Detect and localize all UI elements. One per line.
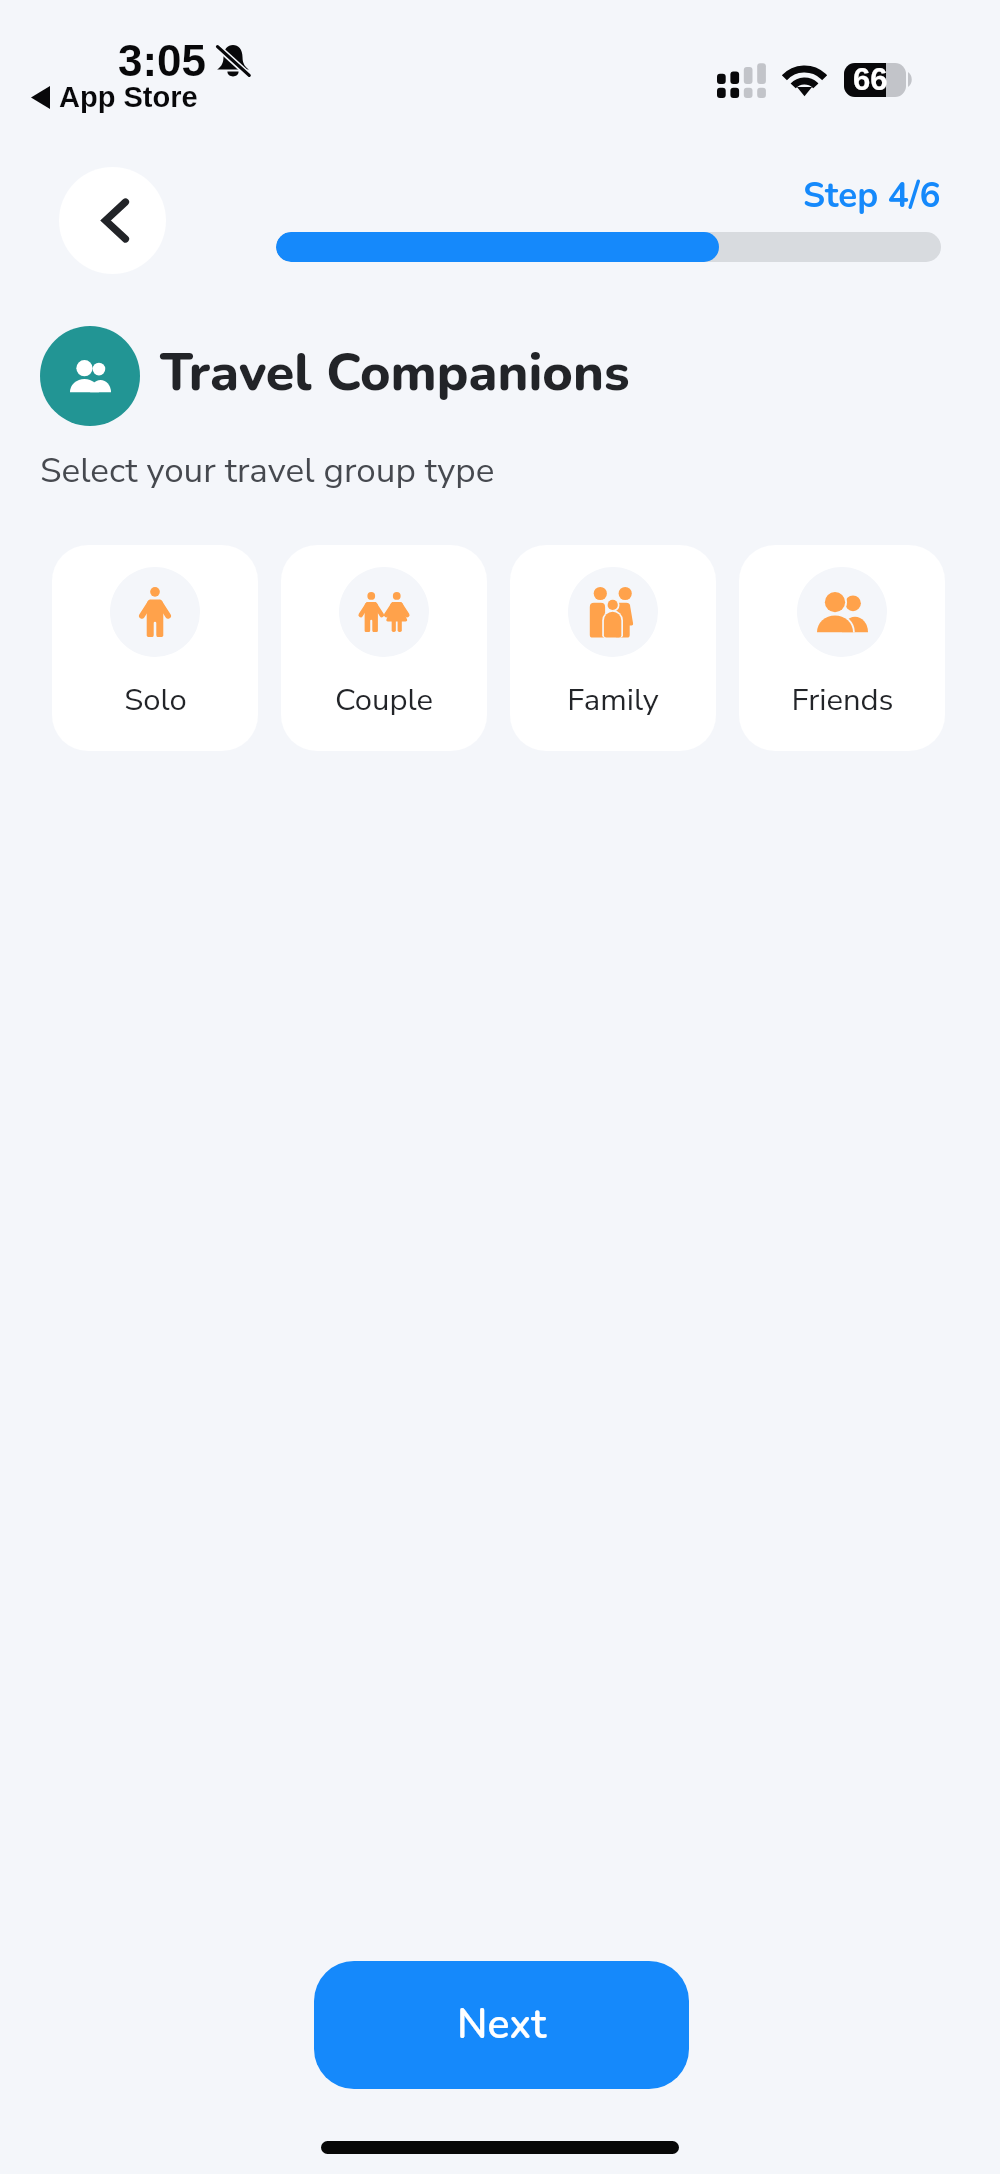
staticText: 3:05 bbox=[118, 36, 207, 85]
staticText: Travel Companions bbox=[160, 337, 630, 408]
button[interactable]: Family bbox=[510, 545, 716, 751]
staticText: App Store bbox=[59, 81, 198, 113]
button[interactable]: Back bbox=[59, 167, 166, 274]
button[interactable]: Friends bbox=[739, 545, 945, 751]
staticText: Solo bbox=[124, 679, 187, 721]
staticText: Friends bbox=[791, 679, 894, 721]
staticText: 66 bbox=[853, 63, 888, 96]
button[interactable]: Solo bbox=[52, 545, 258, 751]
staticText: Step 4/6 bbox=[803, 172, 941, 220]
staticText: Couple bbox=[335, 679, 433, 721]
staticText: Family bbox=[567, 679, 659, 721]
staticText: Select your travel group type bbox=[40, 447, 495, 495]
staticText: Next bbox=[457, 1997, 547, 2053]
button[interactable]: Couple bbox=[281, 545, 487, 751]
button[interactable]: Next bbox=[314, 1961, 689, 2089]
